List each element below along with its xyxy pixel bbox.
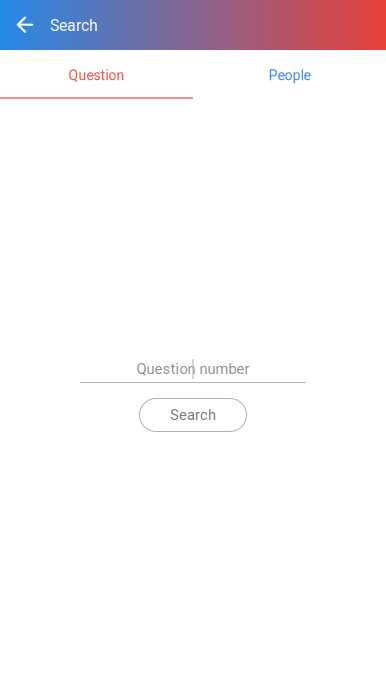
- staticText: People: [268, 67, 310, 84]
- staticText: Question number: [136, 360, 249, 378]
- staticText: Search: [170, 406, 216, 424]
- button[interactable]: Back: [8, 0, 42, 50]
- button[interactable]: People: [193, 50, 386, 97]
- staticText: Search: [50, 16, 98, 35]
- button[interactable]: Question: [0, 50, 193, 97]
- staticText: Question: [68, 67, 124, 84]
- button[interactable]: Search: [139, 398, 247, 432]
